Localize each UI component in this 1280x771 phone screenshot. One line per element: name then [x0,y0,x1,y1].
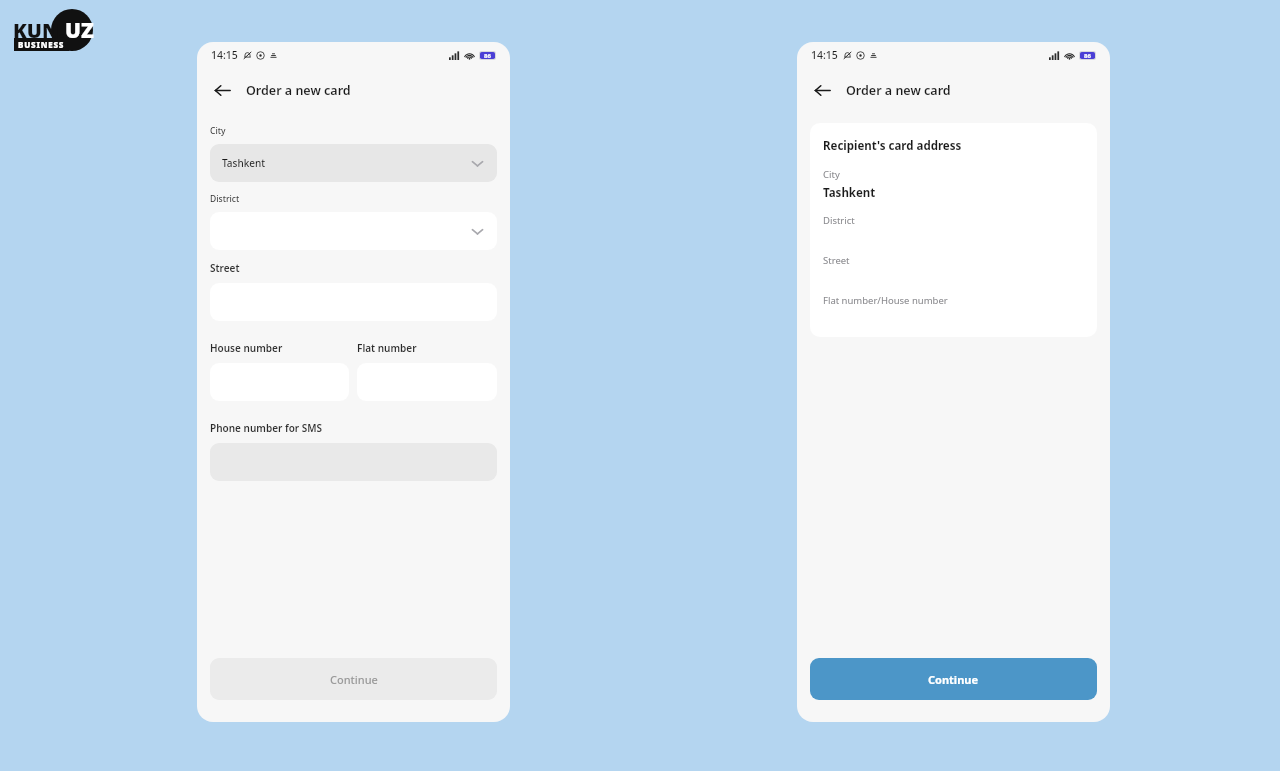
staticText: Tashkent [222,156,266,170]
staticText: BUSINESS [18,39,65,50]
button[interactable]: Continue [210,658,497,700]
staticText: Flat number [357,341,417,355]
staticText: Recipient's card address [823,138,962,154]
staticText: Continue [928,672,979,687]
staticText: District [210,193,240,205]
staticText: 86 [1084,52,1091,59]
staticText: City [210,125,226,137]
staticText: . [59,17,65,44]
button[interactable]: Back [207,75,237,105]
staticText: Phone number for SMS [210,421,323,435]
staticText: City [823,168,840,181]
staticText: KUN [13,17,59,44]
staticText: 14:15 [211,48,238,62]
staticText: 14:15 [811,48,838,62]
button[interactable] [210,212,497,250]
button[interactable]: Tashkent [210,144,497,182]
staticText: Tashkent [823,185,876,201]
staticText: Order a new card [846,82,951,99]
staticText: Street [823,254,850,267]
staticText: House number [210,341,283,355]
button[interactable]: Back [807,75,837,105]
staticText: Continue [330,672,378,687]
staticText: Street [210,261,240,275]
button[interactable]: Continue [810,658,1097,700]
staticText: UZ [65,16,94,45]
staticText: District [823,214,855,227]
staticText: 86 [484,52,491,59]
staticText: Flat number/House number [823,294,948,307]
staticText: Order a new card [246,82,351,99]
